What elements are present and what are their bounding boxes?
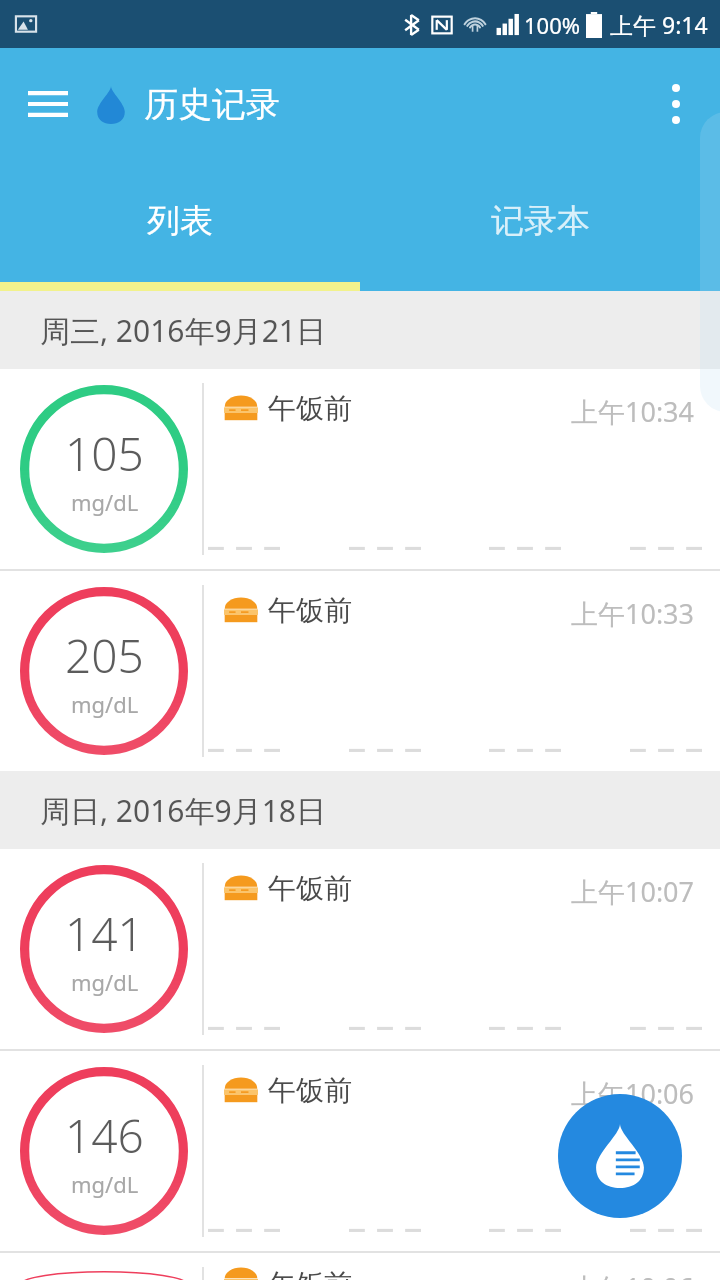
staticText: 上午10:06: [0, 1269, 694, 1280]
button[interactable]: 205: [0, 571, 720, 771]
button[interactable]: More options: [648, 76, 704, 132]
button[interactable]: 105: [0, 369, 720, 569]
staticText: 上午10:33: [0, 595, 694, 632]
staticText: 100%: [524, 10, 581, 40]
staticText: 午饭前: [268, 1073, 352, 1108]
staticText: mg/dL: [71, 967, 139, 997]
button[interactable]: 146: [0, 1051, 720, 1251]
button[interactable]: Add blood glucose reading: [558, 1094, 682, 1218]
staticText: mg/dL: [71, 689, 139, 719]
staticText: 146: [65, 1104, 144, 1167]
staticText: mg/dL: [71, 1169, 139, 1199]
staticText: 午饭前: [268, 391, 352, 426]
button[interactable]: Open navigation menu: [20, 76, 76, 132]
button[interactable]: 141: [0, 849, 720, 1049]
button[interactable]: 列表: [0, 160, 360, 282]
staticText: 205: [65, 624, 144, 687]
staticText: 上午10:34: [0, 393, 694, 430]
staticText: 记录本: [491, 200, 590, 242]
staticText: 105: [65, 422, 144, 485]
staticText: 上午 9:14: [610, 9, 708, 40]
staticText: 午饭前: [268, 871, 352, 906]
staticText: 周三, 2016年9月21日: [40, 310, 326, 351]
staticText: 上午10:07: [0, 873, 694, 910]
staticText: mg/dL: [71, 487, 139, 517]
button[interactable]: 记录本: [360, 160, 720, 282]
staticText: 周日, 2016年9月18日: [40, 790, 326, 831]
staticText: 上午10:06: [0, 1075, 694, 1112]
staticText: 午饭前: [268, 1267, 352, 1280]
staticText: 午饭前: [268, 593, 352, 628]
button[interactable]: 午饭前: [0, 1253, 720, 1280]
staticText: 历史记录: [144, 83, 280, 126]
staticText: 列表: [147, 200, 213, 242]
staticText: 141: [65, 902, 144, 965]
